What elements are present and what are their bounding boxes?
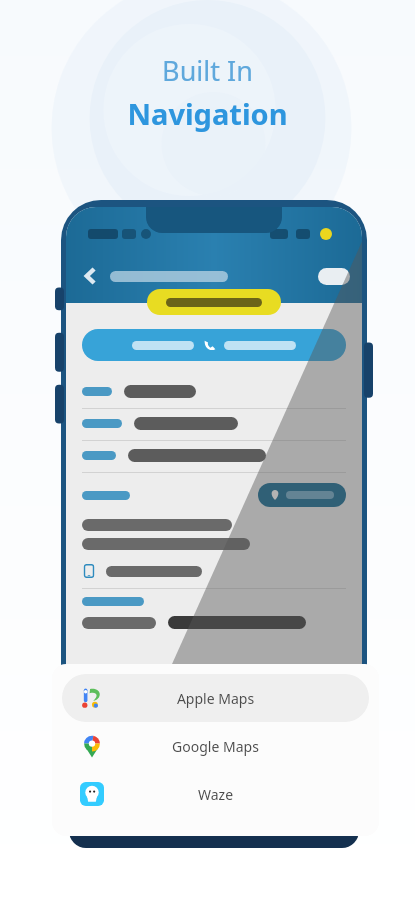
button[interactable] — [258, 483, 346, 507]
button[interactable]: Google Maps — [62, 722, 369, 770]
button[interactable]: Back — [78, 263, 104, 289]
staticText: Navigation — [127, 94, 288, 133]
button[interactable] — [82, 329, 346, 361]
staticText: Google Maps — [104, 737, 327, 756]
staticText: Apple Maps — [104, 689, 327, 708]
button[interactable]: Toggle — [318, 268, 350, 285]
button[interactable]: Apple Maps — [62, 674, 369, 722]
button[interactable] — [147, 289, 281, 315]
staticText: Built In — [162, 52, 253, 89]
button[interactable]: Waze — [62, 770, 369, 818]
staticText: Waze — [104, 785, 327, 804]
